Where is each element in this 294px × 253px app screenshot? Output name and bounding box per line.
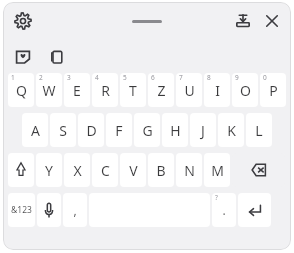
- staticText: U: [184, 81, 195, 100]
- staticText: 8: [207, 73, 211, 82]
- staticText: 7: [179, 73, 183, 82]
- staticText: V: [129, 161, 138, 180]
- button[interactable]: F: [106, 113, 132, 147]
- staticText: 9: [235, 73, 239, 82]
- staticText: N: [184, 161, 195, 180]
- button[interactable]: D: [78, 113, 104, 147]
- button[interactable]: Shift: [8, 153, 34, 187]
- button[interactable]: 7: [176, 73, 202, 107]
- staticText: O: [240, 81, 251, 100]
- button[interactable]: Stickers: [13, 47, 33, 67]
- staticText: B: [156, 161, 166, 180]
- staticText: F: [115, 121, 123, 140]
- staticText: P: [269, 81, 278, 100]
- button[interactable]: B: [148, 153, 174, 187]
- staticText: T: [129, 81, 137, 100]
- staticText: X: [73, 161, 82, 180]
- staticText: J: [201, 121, 205, 140]
- staticText: 1: [11, 73, 15, 82]
- staticText: 0: [263, 73, 267, 82]
- staticText: R: [101, 81, 110, 100]
- button[interactable]: 1: [8, 73, 34, 107]
- staticText: E: [73, 81, 81, 100]
- staticText: H: [170, 121, 181, 140]
- button[interactable]: 4: [92, 73, 118, 107]
- button[interactable]: V: [120, 153, 146, 187]
- button[interactable]: ,: [63, 193, 87, 227]
- button[interactable]: N: [176, 153, 202, 187]
- staticText: ,: [73, 202, 77, 218]
- button[interactable]: Enter: [238, 193, 271, 227]
- button[interactable]: L: [246, 113, 272, 147]
- staticText: Q: [16, 81, 27, 100]
- staticText: W: [42, 81, 56, 100]
- button[interactable]: K: [218, 113, 244, 147]
- button[interactable]: J: [190, 113, 216, 147]
- button[interactable]: Close keyboard: [261, 10, 283, 32]
- staticText: C: [101, 161, 110, 180]
- button[interactable]: 9: [232, 73, 258, 107]
- button[interactable]: 5: [120, 73, 146, 107]
- button[interactable]: 2: [36, 73, 62, 107]
- staticText: K: [227, 121, 236, 140]
- staticText: Z: [157, 81, 166, 100]
- staticText: 6: [151, 73, 155, 82]
- staticText: ?: [215, 193, 218, 202]
- button[interactable]: S: [50, 113, 76, 147]
- staticText: I: [215, 81, 220, 100]
- staticText: A: [31, 121, 40, 140]
- staticText: L: [255, 121, 263, 140]
- staticText: 4: [95, 73, 99, 82]
- staticText: M: [211, 161, 224, 180]
- button[interactable]: A: [22, 113, 48, 147]
- button[interactable]: C: [92, 153, 118, 187]
- button[interactable]: Backspace: [232, 153, 285, 187]
- button[interactable]: Dock keyboard: [232, 10, 254, 32]
- staticText: .: [222, 202, 226, 218]
- button[interactable]: &123: [8, 193, 35, 227]
- button[interactable]: Y: [36, 153, 62, 187]
- button[interactable]: 8: [204, 73, 230, 107]
- button[interactable]: ?: [212, 193, 236, 227]
- staticText: 3: [67, 73, 71, 82]
- staticText: 2: [39, 73, 43, 82]
- button[interactable]: Voice input: [37, 193, 61, 227]
- staticText: Y: [45, 161, 53, 180]
- button[interactable]: G: [134, 113, 160, 147]
- button[interactable]: 3: [64, 73, 90, 107]
- staticText: G: [142, 121, 153, 140]
- button[interactable]: H: [162, 113, 188, 147]
- button[interactable]: X: [64, 153, 90, 187]
- staticText: D: [86, 121, 97, 140]
- button[interactable]: M: [204, 153, 230, 187]
- staticText: 5: [123, 73, 127, 82]
- button[interactable]: 0: [260, 73, 286, 107]
- button[interactable]: 6: [148, 73, 174, 107]
- staticText: &123: [11, 204, 32, 216]
- staticText: S: [59, 121, 67, 140]
- button[interactable]: Settings: [12, 10, 34, 32]
- button[interactable]: Clipboard: [47, 47, 67, 67]
